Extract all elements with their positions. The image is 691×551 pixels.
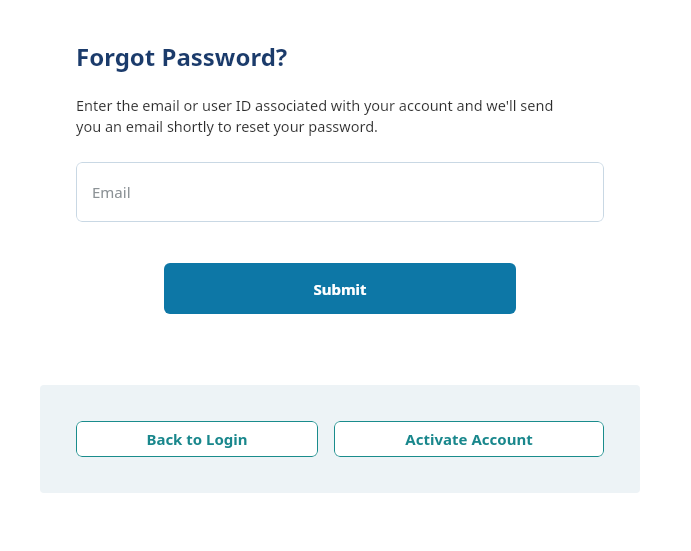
button[interactable]: Activate Account bbox=[334, 421, 604, 457]
staticText: Submit bbox=[313, 279, 367, 299]
button[interactable]: Back to Login bbox=[76, 421, 318, 457]
button[interactable]: Email bbox=[76, 162, 604, 222]
staticText: Enter the email or user ID associated wi… bbox=[76, 95, 576, 137]
staticText: Email bbox=[92, 182, 131, 202]
staticText: Activate Account bbox=[405, 429, 533, 449]
staticText: Forgot Password? bbox=[76, 40, 288, 73]
staticText: Back to Login bbox=[146, 429, 248, 449]
button[interactable]: Submit bbox=[164, 263, 516, 314]
